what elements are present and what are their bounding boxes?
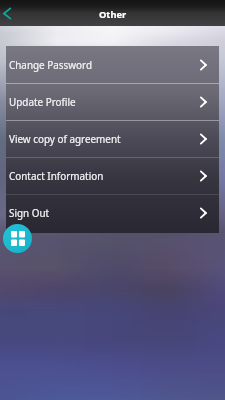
staticText: Other xyxy=(99,8,127,21)
button[interactable]: View copy of agreement xyxy=(6,120,219,157)
button[interactable]: Apps xyxy=(3,224,32,253)
staticText: Sign Out xyxy=(9,206,50,219)
button[interactable]: Sign Out xyxy=(6,194,219,231)
staticText: Change Password xyxy=(9,58,92,71)
staticText: View copy of agreement xyxy=(9,132,121,145)
button[interactable]: Back xyxy=(0,0,18,26)
staticText: Contact Information xyxy=(9,169,104,182)
button[interactable]: Contact Information xyxy=(6,157,219,194)
button[interactable]: Change Password xyxy=(6,46,219,83)
staticText: Update Profile xyxy=(9,95,76,108)
button[interactable]: Update Profile xyxy=(6,83,219,120)
